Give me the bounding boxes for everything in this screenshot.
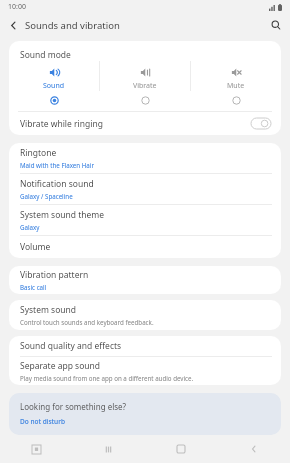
button[interactable]: Notification sound [9, 174, 281, 204]
button[interactable]: Looking for something else? [9, 393, 281, 435]
button[interactable]: Separate app sound [9, 357, 281, 385]
staticText: Separate app sound [20, 360, 101, 372]
staticText: Mute [227, 81, 245, 91]
staticText: System sound theme [20, 209, 105, 221]
staticText: Sounds and vibration [25, 19, 120, 32]
button[interactable]: Sound quality and effects [9, 336, 281, 356]
button[interactable]: System sound theme [9, 205, 281, 235]
button[interactable]: Sound [9, 61, 99, 111]
staticText: System sound [20, 304, 77, 316]
button[interactable]: Vibration pattern [9, 266, 281, 294]
button[interactable]: Vibrate [100, 61, 190, 111]
button[interactable]: Ringtone [9, 143, 281, 173]
staticText: Play media sound from one app on a diffe… [20, 374, 194, 382]
staticText: Vibrate while ringing [20, 118, 251, 130]
button[interactable]: Recent apps [72, 435, 144, 463]
staticText: Galaxy / Spaceline [20, 192, 73, 200]
button[interactable]: Home [144, 435, 217, 463]
staticText: Control touch sounds and keyboard feedba… [20, 318, 154, 326]
staticText: Looking for something else? [20, 401, 127, 412]
button[interactable]: System sound [9, 300, 281, 330]
button[interactable]: Search [266, 15, 286, 35]
button[interactable]: Mute [191, 61, 281, 111]
staticText: Volume [20, 241, 51, 253]
button[interactable]: Vibrate while ringing [9, 112, 281, 135]
button[interactable]: Volume [9, 236, 281, 258]
staticText: Sound mode [20, 49, 71, 61]
staticText: Maid with the Flaxen Hair [20, 161, 94, 169]
staticText: Notification sound [20, 178, 94, 190]
staticText: Basic call [20, 283, 47, 291]
button[interactable]: Hide keyboard [0, 435, 72, 463]
staticText: Sound [43, 81, 65, 91]
staticText: 10:00 [8, 2, 26, 12]
staticText: Ringtone [20, 147, 57, 159]
staticText: Galaxy [20, 223, 40, 231]
staticText: Vibrate [133, 81, 157, 91]
staticText: Do not disturb [20, 417, 65, 426]
staticText: Sound quality and effects [20, 340, 122, 352]
button[interactable]: Back [3, 15, 23, 35]
staticText: Vibration pattern [20, 269, 89, 281]
